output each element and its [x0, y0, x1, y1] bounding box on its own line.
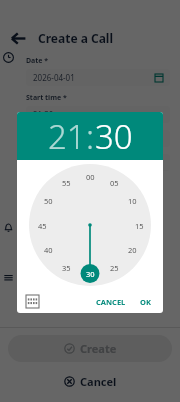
staticText: 2026-04-01 — [33, 72, 75, 83]
staticText: 45 — [38, 221, 47, 231]
staticText: 15 — [135, 221, 144, 231]
button[interactable]: 2026-04-01 — [26, 69, 170, 86]
button[interactable]: CANCEL — [93, 293, 129, 311]
staticText: 55 — [62, 178, 71, 188]
button[interactable]: Notifications — [3, 222, 14, 233]
button[interactable]: (00) — [26, 130, 170, 147]
button[interactable]: Time — [3, 52, 14, 63]
button[interactable]: Switch to keyboard input — [26, 295, 39, 308]
staticText: Create a Call — [38, 30, 114, 46]
staticText: 20 — [128, 245, 137, 255]
staticText: 50 — [44, 196, 53, 206]
button[interactable]: 30 — [95, 114, 133, 159]
staticText: 00 — [86, 172, 95, 182]
button[interactable]: Back — [6, 26, 30, 50]
staticText: 05 — [110, 178, 119, 188]
staticText: 25 — [110, 263, 119, 273]
button[interactable]: Create — [8, 335, 172, 362]
button[interactable]: 21 — [48, 114, 86, 159]
button[interactable]: Cancel — [0, 370, 180, 392]
staticText: OK — [140, 297, 151, 307]
staticText: (00) — [33, 157, 47, 168]
staticText: Date * — [26, 56, 49, 66]
button[interactable]: (00) — [26, 154, 170, 171]
button[interactable]: Menu — [3, 272, 14, 283]
staticText: 30 — [95, 114, 133, 159]
staticText: 21:30 — [33, 109, 54, 120]
staticText: : — [86, 114, 95, 159]
staticText: 40 — [44, 245, 53, 255]
staticText: 35 — [62, 263, 71, 273]
staticText: Start time * — [26, 93, 67, 103]
staticText: 21 — [48, 114, 86, 159]
staticText: CANCEL — [96, 297, 126, 307]
button[interactable]: OK — [137, 293, 154, 311]
staticText: Cancel — [80, 374, 117, 389]
button[interactable]: 21:30 — [26, 106, 170, 123]
staticText: 30 — [86, 269, 95, 279]
staticText: 10 — [128, 196, 137, 206]
staticText: Create — [80, 341, 117, 356]
